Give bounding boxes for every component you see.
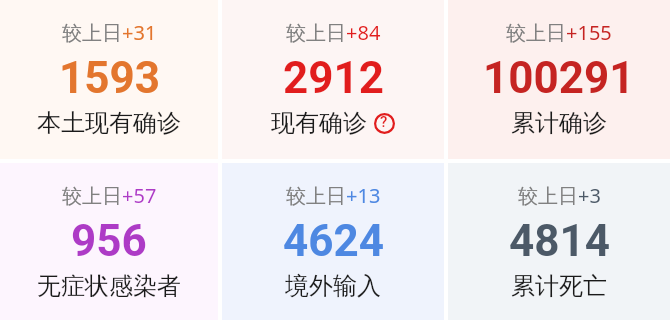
- staticText: 较上日+57: [62, 182, 157, 209]
- staticText: 4814: [509, 215, 610, 267]
- staticText: 100291: [483, 52, 635, 104]
- button[interactable]: 说明: [374, 113, 395, 134]
- staticText: 累计死亡: [511, 271, 607, 301]
- staticText: 境外输入: [285, 271, 381, 301]
- button[interactable]: 较上日+13: [222, 163, 444, 320]
- button[interactable]: 较上日+3: [448, 163, 670, 320]
- staticText: 本土现有确诊: [37, 108, 181, 138]
- staticText: 956: [71, 215, 147, 267]
- staticText: ?: [380, 113, 388, 131]
- staticText: 较上日+155: [506, 19, 612, 46]
- staticText: 较上日+3: [518, 182, 601, 209]
- staticText: 累计确诊: [511, 108, 607, 138]
- button[interactable]: 较上日+31: [0, 0, 218, 159]
- staticText: 现有确诊: [271, 108, 367, 138]
- staticText: 2912: [283, 52, 384, 104]
- staticText: 无症状感染者: [37, 271, 181, 301]
- button[interactable]: 较上日+84: [222, 0, 444, 159]
- staticText: 较上日+31: [62, 19, 157, 46]
- staticText: 1593: [59, 52, 160, 104]
- staticText: 较上日+84: [286, 19, 381, 46]
- button[interactable]: 较上日+57: [0, 163, 218, 320]
- staticText: 4624: [283, 215, 384, 267]
- button[interactable]: 较上日+155: [448, 0, 670, 159]
- staticText: 较上日+13: [286, 182, 381, 209]
